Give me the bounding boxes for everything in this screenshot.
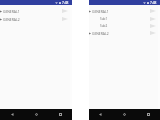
staticText: GENERAL2	[3, 17, 20, 22]
button[interactable]: Home	[112, 109, 136, 120]
button[interactable]: Back	[89, 109, 112, 120]
button[interactable]: Sub2	[89, 22, 160, 29]
button[interactable]: Home	[24, 109, 48, 120]
button[interactable]: GENERAL1	[89, 7, 160, 15]
button[interactable]: Recents	[48, 109, 72, 120]
staticText: GENERAL1	[92, 9, 109, 14]
staticText: GENERAL1	[3, 9, 20, 14]
staticText: GENERAL2	[92, 31, 109, 36]
staticText: 7:48	[62, 1, 69, 5]
staticText: Sub2	[100, 24, 108, 28]
button[interactable]: GENERAL2	[0, 15, 72, 23]
button[interactable]: GENERAL2	[89, 29, 160, 37]
button[interactable]: Sub1	[89, 15, 160, 22]
button[interactable]: Back	[0, 109, 24, 120]
button[interactable]: Recents	[136, 109, 160, 120]
staticText: Sub1	[100, 17, 108, 21]
staticText: 7:48	[150, 1, 157, 5]
button[interactable]: GENERAL1	[0, 7, 72, 15]
